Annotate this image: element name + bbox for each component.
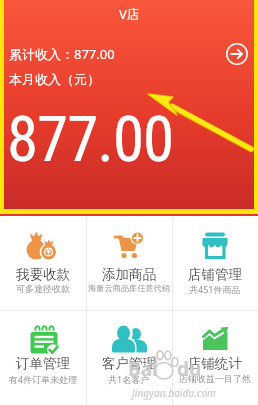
button[interactable]: 店铺统计 xyxy=(172,311,258,405)
staticText: 店铺管理 xyxy=(188,266,242,283)
button[interactable]: 订单管理 xyxy=(0,311,86,405)
staticText: 添加商品 xyxy=(102,266,156,283)
button[interactable] xyxy=(225,42,249,66)
button[interactable]: 店铺管理 xyxy=(172,216,258,310)
staticText: 877.00 xyxy=(7,103,174,177)
staticText: 累计收入：877.00 xyxy=(9,45,115,63)
staticText: 共451件商品 xyxy=(189,283,241,295)
staticText: 海量云商品库任意代销 xyxy=(88,283,170,293)
staticText: 店铺统计 xyxy=(188,355,242,372)
button[interactable]: V店 xyxy=(0,2,258,26)
button[interactable]: 客户管理 xyxy=(86,311,172,405)
staticText: V店 xyxy=(119,5,140,23)
staticText: du xyxy=(177,356,202,382)
staticText: jingyan.baidu.com xyxy=(132,386,216,400)
staticText: 有4件订单未处理 xyxy=(9,373,78,385)
staticText: 可多途径收款 xyxy=(16,283,70,294)
button[interactable]: 我要收款 xyxy=(0,216,86,310)
staticText: 客户管理 xyxy=(102,355,156,372)
staticText: 订单管理 xyxy=(16,355,70,372)
staticText: 共1名客户 xyxy=(108,373,150,385)
staticText: 本月收入（元） xyxy=(9,71,100,87)
staticText: 我要收款 xyxy=(16,266,70,283)
staticText: Bai xyxy=(128,356,158,382)
button[interactable]: 添加商品 xyxy=(86,216,172,310)
staticText: 店铺收益一目了然 xyxy=(179,373,251,384)
